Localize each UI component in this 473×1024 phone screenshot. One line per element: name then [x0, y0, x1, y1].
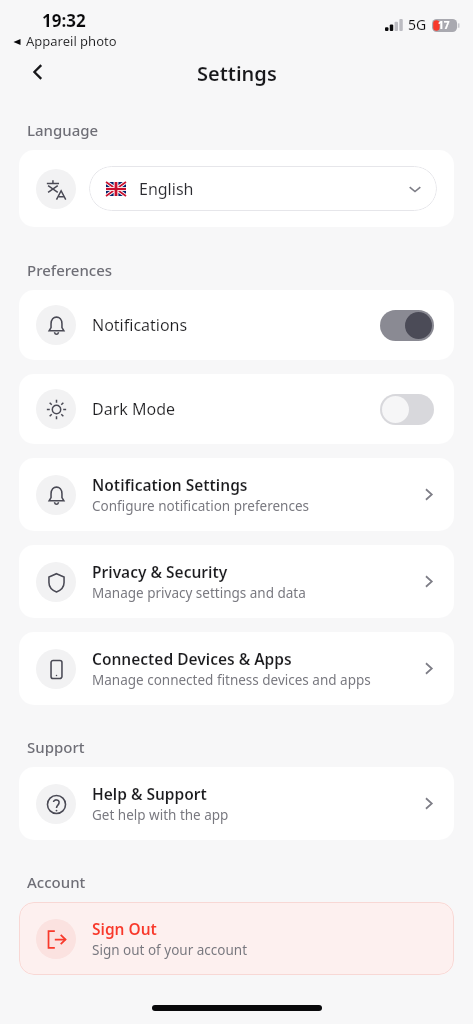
button[interactable]: Off: [380, 394, 434, 425]
button[interactable]: English: [19, 150, 454, 227]
button[interactable]: English: [89, 166, 437, 211]
staticText: Support: [27, 737, 85, 757]
staticText: English: [139, 178, 194, 200]
staticText: Get help with the app: [92, 806, 229, 824]
button[interactable]: Notification Settings: [19, 458, 454, 531]
button[interactable]: Notifications: [19, 290, 454, 360]
button[interactable]: Help & Support: [19, 767, 454, 840]
staticText: 5G: [408, 15, 427, 34]
staticText: Preferences: [27, 260, 113, 280]
staticText: Connected Devices & Apps: [92, 648, 292, 669]
staticText: Appareil photo: [26, 32, 117, 50]
staticText: Manage privacy settings and data: [92, 584, 306, 602]
staticText: Notification Settings: [92, 474, 248, 495]
button[interactable]: Dark Mode: [19, 374, 454, 444]
staticText: Manage connected fitness devices and app…: [92, 671, 371, 689]
staticText: Help & Support: [92, 783, 207, 804]
staticText: Dark Mode: [92, 398, 176, 420]
button[interactable]: Privacy & Security: [19, 545, 454, 618]
button[interactable]: Sign Out: [19, 902, 454, 975]
button[interactable]: On: [380, 310, 434, 341]
staticText: 19:32: [42, 9, 86, 32]
staticText: Language: [27, 120, 99, 140]
staticText: Sign Out: [92, 918, 157, 939]
staticText: Configure notification preferences: [92, 497, 309, 515]
staticText: Notifications: [92, 314, 188, 336]
button[interactable]: Back: [20, 54, 56, 90]
staticText: 17: [438, 18, 450, 32]
staticText: Privacy & Security: [92, 561, 228, 582]
staticText: Settings: [197, 60, 277, 87]
staticText: Sign out of your account: [92, 941, 248, 959]
button[interactable]: Connected Devices & Apps: [19, 632, 454, 705]
staticText: Account: [27, 872, 86, 892]
